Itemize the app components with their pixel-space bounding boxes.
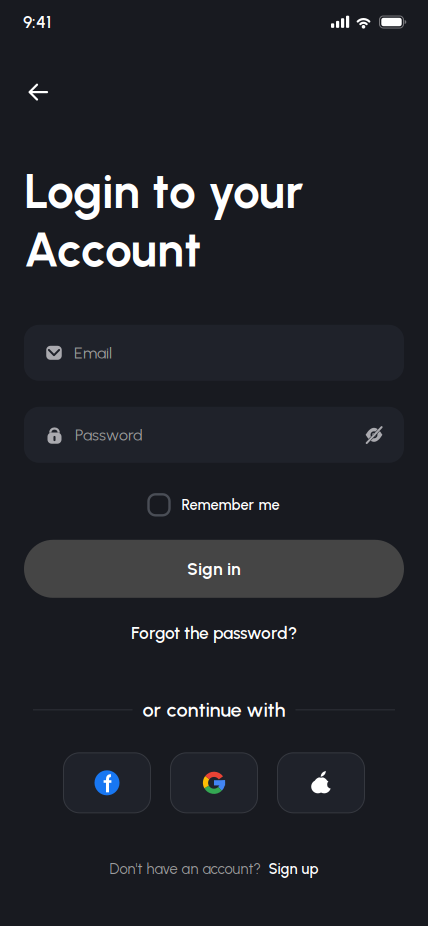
staticText: Password — [75, 425, 143, 444]
button[interactable]: Continue with Facebook — [63, 753, 150, 813]
button[interactable]: Back — [16, 70, 60, 114]
staticText: Sign up — [268, 860, 318, 877]
staticText: or continue with — [142, 698, 285, 721]
staticText: Email — [74, 343, 112, 362]
button[interactable]: Sign in — [24, 540, 404, 598]
button[interactable]: Email — [24, 325, 404, 381]
staticText: Account — [24, 222, 201, 278]
staticText: Forgot the password? — [131, 623, 297, 643]
staticText: Don't have an account? — [109, 860, 260, 877]
staticText: Login to your — [24, 163, 303, 219]
staticText: 9:41 — [23, 12, 51, 32]
button[interactable]: Show password — [365, 426, 383, 444]
button[interactable]: Password — [24, 407, 404, 463]
staticText: Sign in — [187, 559, 241, 579]
button[interactable]: Continue with Apple — [277, 753, 364, 813]
button[interactable]: Sign up — [268, 860, 318, 877]
button[interactable]: Forgot the password? — [131, 623, 297, 643]
staticText: Remember me — [181, 496, 279, 513]
button[interactable]: Continue with Google — [170, 753, 257, 813]
button[interactable]: Remember me — [148, 494, 279, 515]
